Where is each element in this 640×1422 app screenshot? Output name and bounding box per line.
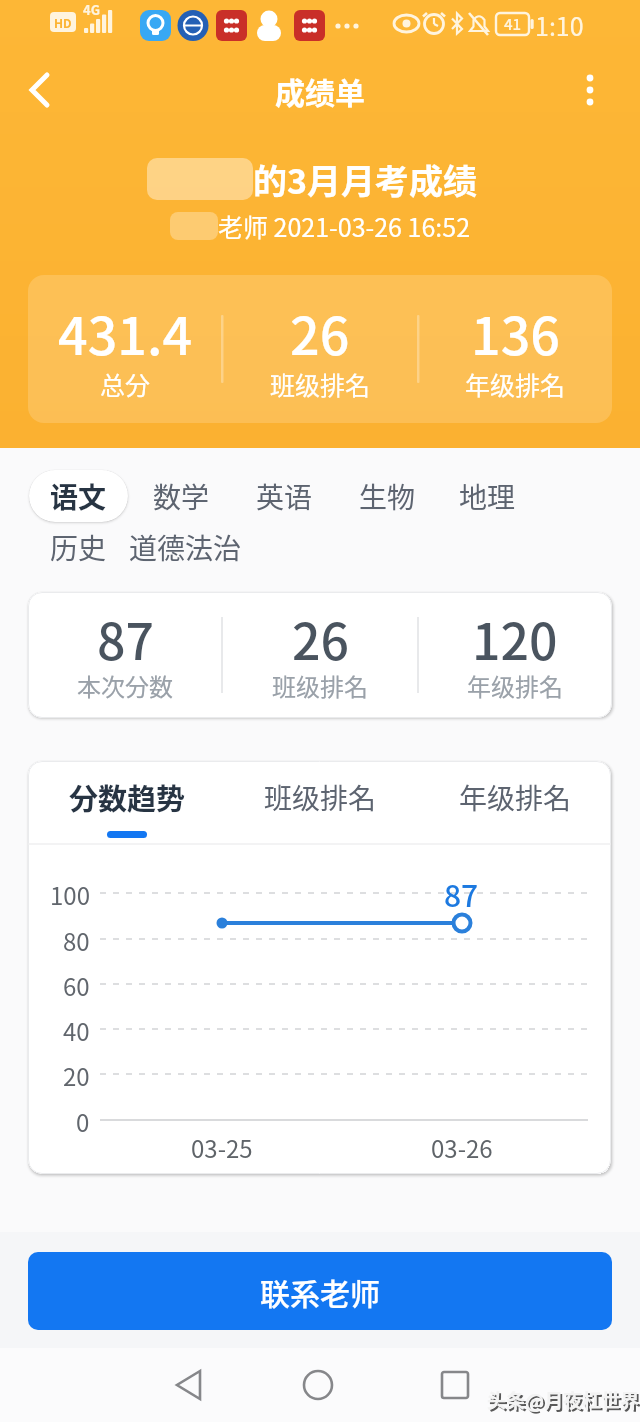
- staticText: 地理: [459, 476, 516, 517]
- staticText: 联系老师: [260, 1270, 380, 1313]
- staticText: 431.4: [58, 295, 193, 359]
- staticText: HD: [54, 14, 72, 31]
- staticText: 4G: [83, 0, 100, 18]
- button[interactable]: 数学: [146, 470, 216, 522]
- staticText: 60: [63, 968, 90, 1000]
- staticText: 87: [97, 602, 154, 664]
- button[interactable]: [288, 1355, 348, 1415]
- button[interactable]: 英语: [249, 470, 319, 522]
- staticText: 数学: [153, 476, 210, 517]
- staticText: 40: [63, 1013, 90, 1045]
- button[interactable]: 地理: [452, 470, 522, 522]
- staticText: 0: [76, 1104, 90, 1136]
- staticText: 班级排名: [270, 366, 371, 400]
- staticText: 头条@月夜杠世界: [489, 1388, 640, 1416]
- button[interactable]: 联系老师: [28, 1252, 612, 1330]
- staticText: 班级排名: [272, 668, 368, 702]
- staticText: 80: [63, 923, 90, 955]
- staticText: 成绩单: [275, 69, 365, 112]
- staticText: 136: [471, 295, 560, 359]
- staticText: 20: [63, 1058, 90, 1090]
- button[interactable]: 班级排名: [255, 775, 385, 819]
- staticText: 41: [504, 13, 522, 35]
- staticText: 100: [50, 877, 90, 909]
- staticText: 道德法治: [129, 527, 242, 568]
- staticText: 1:10: [535, 7, 584, 41]
- staticText: 年级排名: [465, 366, 566, 400]
- button[interactable]: 生物: [352, 470, 422, 522]
- staticText: 26: [290, 295, 350, 359]
- staticText: 英语: [256, 476, 313, 517]
- button[interactable]: 历史: [43, 524, 113, 570]
- staticText: 总分: [100, 366, 151, 400]
- button[interactable]: 语文: [29, 470, 128, 522]
- button[interactable]: [16, 66, 64, 114]
- staticText: 年级排名: [459, 777, 572, 818]
- button[interactable]: [566, 66, 614, 114]
- button[interactable]: 年级排名: [450, 775, 580, 819]
- staticText: 分数趋势: [69, 776, 186, 818]
- staticText: 本次分数: [77, 668, 173, 702]
- staticText: 头条@月夜杠世界: [487, 1386, 640, 1414]
- button[interactable]: 道德法治: [125, 524, 245, 570]
- staticText: 语文: [50, 476, 107, 517]
- staticText: 老师 2021-03-26 16:52: [218, 208, 471, 244]
- staticText: 120: [472, 602, 558, 664]
- button[interactable]: 分数趋势: [62, 775, 192, 819]
- staticText: 班级排名: [264, 777, 377, 818]
- staticText: 年级排名: [467, 668, 563, 702]
- staticText: 的3月月考成绩: [253, 155, 478, 203]
- button[interactable]: [425, 1355, 485, 1415]
- button[interactable]: [157, 1355, 217, 1415]
- staticText: 历史: [50, 527, 107, 568]
- staticText: 87: [444, 872, 479, 910]
- staticText: 26: [292, 602, 349, 664]
- staticText: 生物: [359, 476, 416, 517]
- staticText: 03-26: [431, 1130, 493, 1164]
- staticText: 03-25: [191, 1130, 253, 1164]
